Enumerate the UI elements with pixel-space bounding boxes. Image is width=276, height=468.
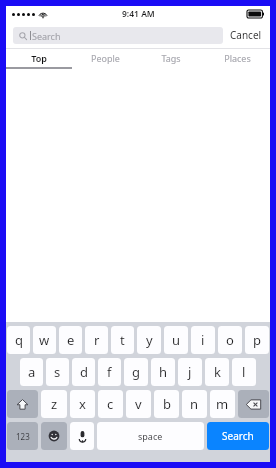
button[interactable]: w [33,326,56,354]
staticText: Top [31,52,47,64]
staticText: h [159,363,168,381]
button[interactable]: l [232,358,256,386]
button[interactable]: Top [6,49,72,67]
staticText: w [39,331,50,349]
staticText: o [226,331,234,349]
button[interactable]: k [205,358,229,386]
staticText: z [51,395,58,413]
staticText: d [80,363,88,381]
button[interactable]: People [72,49,138,67]
button[interactable]: q [7,326,30,354]
staticText: a [28,363,36,381]
staticText: g [132,363,140,381]
button[interactable]: z [41,390,67,418]
button[interactable]: a [20,358,43,386]
staticText: Search [32,30,61,42]
staticText: x [79,395,86,413]
button[interactable]: t [111,326,134,354]
staticText: 123 [16,431,30,442]
button[interactable]: h [151,358,175,386]
staticText: j [188,363,192,381]
button[interactable]: d [72,358,95,386]
button[interactable]: u [164,326,188,354]
staticText: u [172,331,181,349]
staticText: t [120,331,125,349]
button[interactable]: x [70,390,95,418]
button[interactable]: j [178,358,202,386]
staticText: l [242,363,246,381]
button[interactable]: b [154,390,179,418]
button[interactable]: p [245,326,269,354]
button[interactable]: c [98,390,123,418]
staticText: Places [224,52,251,64]
button[interactable]: Voice input [70,422,94,450]
button[interactable]: 123 [7,422,38,450]
staticText: r [94,331,100,349]
button[interactable]: Search [207,422,269,450]
button[interactable]: Shift [7,390,38,418]
button[interactable]: g [124,358,148,386]
staticText: space [138,430,163,442]
staticText: People [91,52,120,64]
button[interactable]: v [126,390,151,418]
button[interactable]: Tags [138,49,204,67]
button[interactable]: e [59,326,82,354]
staticText: v [135,395,142,413]
staticText: Tags [161,52,181,64]
staticText: c [107,395,114,413]
staticText: y [146,331,153,349]
staticText: k [214,363,221,381]
staticText: 9:41 AM [122,8,155,20]
button[interactable]: Emoji [41,422,67,450]
button[interactable]: m [210,390,235,418]
staticText: m [216,395,229,413]
button[interactable]: space [97,422,204,450]
button[interactable]: y [137,326,161,354]
button[interactable]: o [218,326,242,354]
staticText: f [107,363,112,381]
staticText: s [54,363,61,381]
button[interactable]: Search [13,27,223,44]
staticText: e [67,331,75,349]
staticText: q [15,331,23,349]
staticText: b [163,395,171,413]
button[interactable]: Backspace [238,390,269,418]
staticText: i [201,331,205,349]
button[interactable]: f [98,358,121,386]
staticText: Cancel [230,28,262,42]
button[interactable]: n [182,390,207,418]
button[interactable]: i [191,326,215,354]
staticText: Search [222,429,254,443]
button[interactable]: Places [204,49,270,67]
button[interactable]: Cancel [223,26,263,44]
staticText: n [190,395,199,413]
button[interactable]: r [85,326,108,354]
staticText: p [253,331,261,349]
button[interactable]: s [46,358,69,386]
